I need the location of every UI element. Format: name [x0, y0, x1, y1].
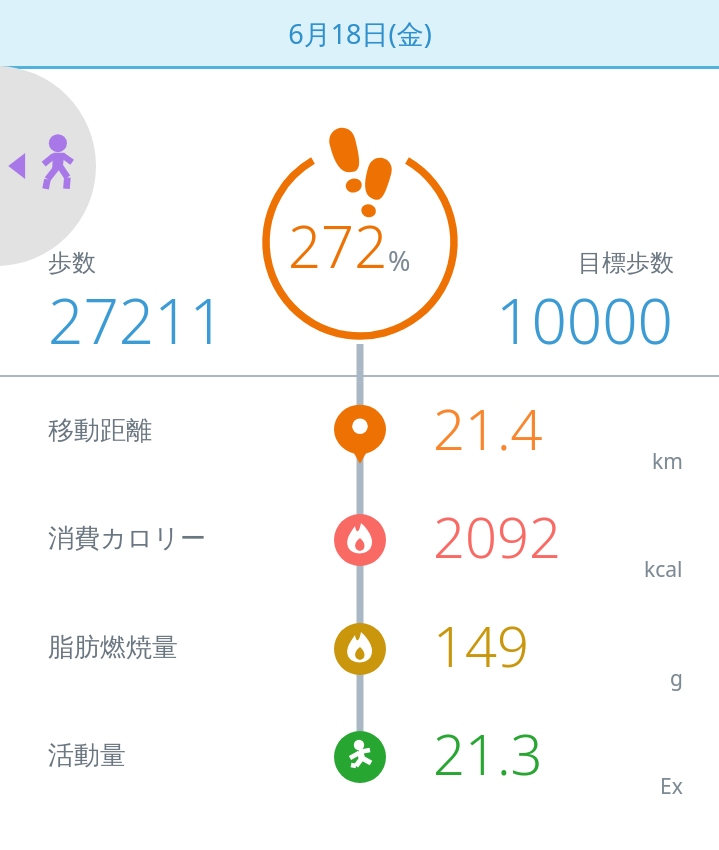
button[interactable]: 2092	[433, 498, 561, 574]
staticText: 149	[433, 607, 529, 683]
staticText: 21.4	[433, 390, 543, 466]
staticText: 移動距離	[48, 414, 152, 447]
button[interactable]: 272	[288, 206, 411, 285]
button[interactable]: 21.4	[433, 390, 543, 466]
staticText: 目標歩数	[578, 248, 674, 278]
staticText: km	[652, 447, 683, 476]
staticText: 272	[288, 206, 388, 285]
button[interactable]: 21.3	[433, 715, 543, 791]
staticText: 消費カロリー	[48, 522, 206, 555]
button[interactable]: 6月18日(金)	[0, 0, 719, 66]
button[interactable]: 活動量	[48, 739, 126, 772]
button[interactable]: 149	[433, 607, 529, 683]
button[interactable]: 消費カロリー	[48, 522, 206, 555]
staticText: 脂肪燃焼量	[48, 631, 178, 664]
staticText: 活動量	[48, 739, 126, 772]
staticText: kcal	[644, 555, 683, 584]
staticText: 10000	[496, 278, 674, 362]
staticText: 6月18日(金)	[288, 15, 432, 52]
staticText: %	[388, 242, 411, 279]
staticText: 21.3	[433, 715, 543, 791]
staticText: 27211	[48, 278, 226, 362]
button[interactable]: 移動距離	[48, 414, 152, 447]
button[interactable]: 歩数	[48, 248, 226, 362]
staticText: g	[670, 664, 683, 693]
staticText: 2092	[433, 498, 561, 574]
button[interactable]: 目標歩数	[496, 248, 674, 362]
button[interactable]: 脂肪燃焼量	[48, 631, 178, 664]
staticText: 歩数	[48, 248, 96, 278]
staticText: Ex	[660, 772, 683, 801]
